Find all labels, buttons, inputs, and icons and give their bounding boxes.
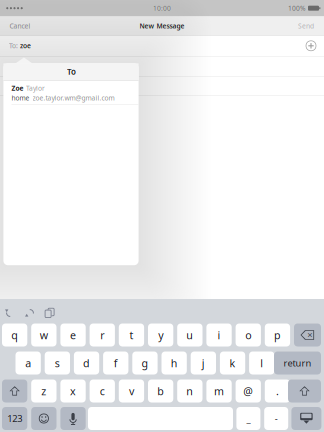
- staticText: o: [245, 328, 251, 342]
- staticText: 10:00: [153, 4, 171, 13]
- button[interactable]: return: [274, 351, 321, 374]
- staticText: Cancel: [9, 22, 30, 30]
- button[interactable]: Emoji: [31, 407, 56, 430]
- button[interactable]: -: [264, 407, 288, 430]
- staticText: zoe.taylor.wm@gmail.com: [32, 93, 114, 102]
- staticText: j: [202, 356, 205, 370]
- staticText: i: [218, 328, 221, 342]
- staticText: To:: [9, 41, 18, 50]
- staticText: l: [260, 356, 263, 370]
- button[interactable]: Shift: [288, 379, 321, 402]
- staticText: r: [100, 328, 104, 342]
- staticText: a: [25, 356, 31, 370]
- staticText: ×: [307, 328, 312, 341]
- button[interactable]: Zoe: [11, 83, 133, 102]
- staticText: e: [70, 328, 76, 342]
- staticText: -: [275, 412, 278, 425]
- button[interactable]: Send: [278, 17, 314, 35]
- staticText: m: [214, 384, 224, 398]
- staticText: f: [114, 356, 118, 370]
- staticText: p: [274, 328, 281, 342]
- staticText: t: [129, 328, 133, 342]
- staticText: New Message: [139, 22, 184, 30]
- staticText: Taylor: [26, 84, 45, 92]
- staticText: @: [243, 384, 253, 398]
- staticText: 123: [7, 412, 22, 425]
- button[interactable]: Hide keyboard: [291, 407, 321, 430]
- staticText: z: [41, 384, 46, 398]
- button[interactable]: 123: [2, 407, 27, 430]
- staticText: s: [55, 356, 60, 370]
- staticText: c: [100, 384, 105, 398]
- staticText: .: [276, 384, 279, 398]
- button[interactable]: s: [45, 351, 70, 374]
- button[interactable]: h: [161, 351, 187, 374]
- button[interactable]: Undo: [5, 308, 15, 317]
- button[interactable]: g: [132, 351, 158, 374]
- button[interactable]: y: [148, 323, 173, 346]
- button[interactable]: k: [220, 351, 245, 374]
- button[interactable]: j: [191, 351, 216, 374]
- staticText: _: [246, 412, 250, 425]
- staticText: y: [158, 328, 163, 342]
- button[interactable]: q: [2, 323, 27, 346]
- button[interactable]: @: [236, 379, 261, 402]
- staticText: To: [67, 66, 76, 77]
- button[interactable]: c: [90, 379, 115, 402]
- staticText: b: [157, 384, 164, 398]
- button[interactable]: t: [119, 323, 144, 346]
- staticText: h: [171, 356, 178, 370]
- button[interactable]: o: [236, 323, 261, 346]
- staticText: w: [40, 328, 48, 342]
- button[interactable]: n: [177, 379, 202, 402]
- button[interactable]: i: [206, 323, 232, 346]
- button[interactable]: Redo: [25, 308, 35, 317]
- button[interactable]: v: [119, 379, 144, 402]
- button[interactable]: m: [206, 379, 232, 402]
- button[interactable]: d: [74, 351, 99, 374]
- button[interactable]: p: [265, 323, 290, 346]
- button[interactable]: b: [148, 379, 173, 402]
- staticText: n: [186, 384, 193, 398]
- button[interactable]: w: [31, 323, 56, 346]
- button[interactable]: Shift: [2, 379, 27, 402]
- button[interactable]: e: [60, 323, 86, 346]
- button[interactable]: r: [90, 323, 115, 346]
- staticText: d: [83, 356, 90, 370]
- staticText: zoe: [20, 41, 31, 50]
- button[interactable]: u: [177, 323, 202, 346]
- staticText: q: [11, 328, 18, 342]
- button[interactable]: Dictate: [60, 407, 86, 430]
- button[interactable]: Backspace: [294, 323, 321, 346]
- staticText: x: [70, 384, 76, 398]
- button[interactable]: Cancel: [9, 17, 49, 35]
- button[interactable]: a: [15, 351, 41, 374]
- staticText: Send: [298, 22, 314, 30]
- staticText: g: [141, 356, 148, 370]
- button[interactable]: f: [103, 351, 128, 374]
- button[interactable]: z: [31, 379, 56, 402]
- staticText: Zoe: [11, 84, 23, 92]
- button[interactable]: _: [236, 407, 260, 430]
- button[interactable]: x: [60, 379, 86, 402]
- button[interactable]: l: [249, 351, 274, 374]
- staticText: return: [283, 357, 311, 369]
- button[interactable]: .: [265, 379, 290, 402]
- button[interactable]: Paste: [44, 307, 55, 318]
- staticText: k: [230, 356, 236, 370]
- staticText: home: [11, 93, 29, 102]
- button[interactable]: Add contact: [305, 40, 317, 52]
- staticText: v: [129, 384, 134, 398]
- staticText: 100%: [288, 4, 306, 13]
- staticText: u: [186, 328, 193, 342]
